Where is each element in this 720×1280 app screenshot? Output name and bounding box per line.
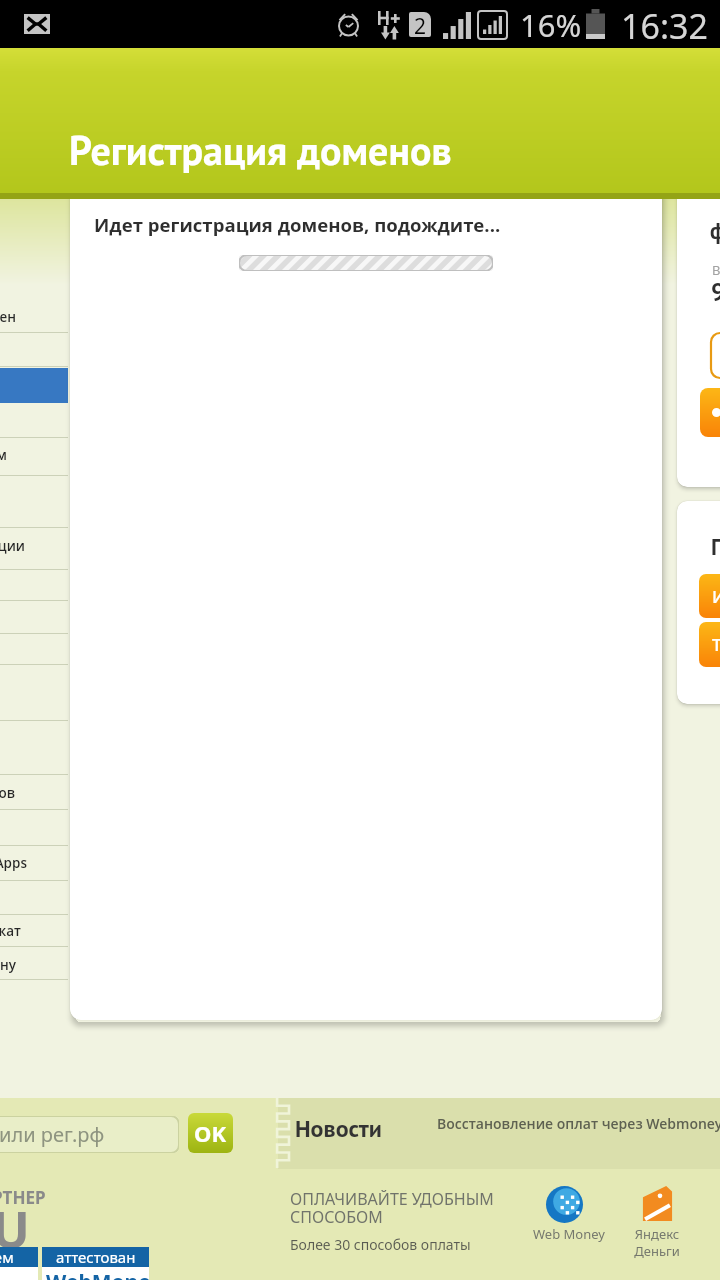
button[interactable] xyxy=(711,333,720,378)
staticText: 16% xyxy=(520,4,582,46)
staticText: Перенос доменов к нам xyxy=(0,446,7,464)
button[interactable] xyxy=(0,774,68,809)
button[interactable]: Инструкции xyxy=(699,574,720,618)
staticText: Идет регистрация доменов, подождите... xyxy=(94,212,501,237)
button[interactable] xyxy=(0,527,68,569)
staticText: Перенести к нам домену xyxy=(0,956,16,974)
staticText: Новости xyxy=(295,1113,382,1144)
staticText: ОПЛАЧИВАЙТЕ УДОБНЫМ СПОСОБОМ xyxy=(290,1188,494,1228)
staticText: Инструкции xyxy=(712,585,720,608)
button[interactable] xyxy=(0,809,68,845)
staticText: Техподдержка xyxy=(712,633,720,656)
button[interactable] xyxy=(0,600,68,633)
staticText: Домены и акции xyxy=(0,537,25,555)
button[interactable]: Техподдержка xyxy=(699,622,720,667)
staticText: Регистрация доменов xyxy=(69,124,452,176)
button[interactable] xyxy=(0,475,68,527)
button[interactable] xyxy=(0,332,68,367)
staticText: Восстановление оплат через Webmoney xyxy=(437,1114,720,1133)
staticText: 16:32 xyxy=(621,3,708,49)
button[interactable]: OK xyxy=(188,1113,233,1153)
staticText: WebMoney xyxy=(46,1268,153,1280)
staticText: Всего: xyxy=(712,261,720,279)
button[interactable] xyxy=(0,845,68,880)
staticText: или рег.рф xyxy=(0,1121,105,1148)
staticText: U xyxy=(0,1195,30,1263)
staticText: SSL-сертификат xyxy=(0,922,21,940)
button[interactable] xyxy=(0,279,68,332)
staticText: 99 xyxy=(711,276,720,308)
staticText: фвыв xyxy=(710,216,720,246)
staticText: Web Money xyxy=(533,1225,605,1243)
staticText: 2 xyxy=(414,12,427,37)
staticText: Проверка домен xyxy=(0,308,16,326)
staticText: Более 30 способов оплаты xyxy=(290,1235,471,1254)
button[interactable] xyxy=(0,946,68,979)
staticText: Почта Google Apps xyxy=(0,854,27,872)
button[interactable] xyxy=(0,880,68,914)
button[interactable] xyxy=(0,914,68,946)
button[interactable] xyxy=(0,664,68,720)
staticText: маем xyxy=(0,1247,14,1267)
staticText: аттестован xyxy=(56,1247,136,1267)
staticText: РТНЕР xyxy=(0,1186,46,1209)
button[interactable] xyxy=(0,720,68,774)
button[interactable] xyxy=(0,367,68,403)
button[interactable] xyxy=(700,388,720,437)
staticText: Помощь xyxy=(711,532,720,562)
staticText: Освобождение доменов xyxy=(0,784,15,802)
staticText: Яндекс Деньги xyxy=(628,1225,686,1260)
staticText: OK xyxy=(194,1118,227,1148)
button[interactable] xyxy=(0,437,68,475)
button[interactable] xyxy=(0,633,68,664)
button[interactable]: или рег.рф xyxy=(0,1116,179,1153)
button[interactable] xyxy=(0,569,68,600)
